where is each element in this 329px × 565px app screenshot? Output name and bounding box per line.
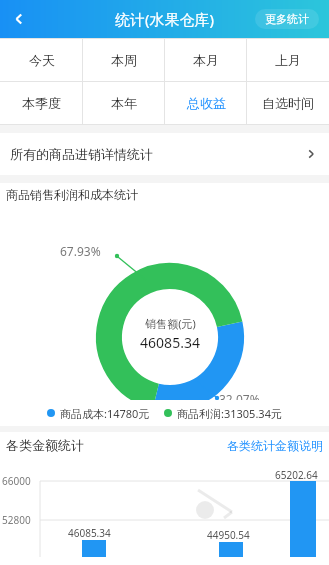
button[interactable]: Back [0,0,38,38]
staticText: 商品销售利润和成本统计 [6,187,138,202]
staticText: 66000 [2,474,31,488]
button[interactable]: 今天 [0,39,83,81]
staticText: 46085.34 [68,526,111,540]
staticText: 商品成本:14780元 [60,406,150,421]
staticText: 统计(水果仓库) [115,9,215,29]
staticText: 总收益 [187,95,226,111]
staticText: 各类统计金额说明 [227,438,323,453]
staticText: 本季度 [22,95,61,111]
staticText: 46085.34 [140,333,200,352]
staticText: 各类金额统计 [6,437,84,453]
staticText: 52800 [2,513,31,527]
staticText: 44950.54 [207,528,250,542]
staticText: 本年 [111,95,137,111]
button[interactable]: 各类统计金额说明 [227,438,323,453]
staticText: 上月 [275,52,301,68]
button[interactable]: 所有的商品进销详情统计 [0,133,329,175]
staticText: 今天 [29,52,55,68]
button[interactable]: 本月 [165,39,247,81]
staticText: 商品利润:31305.34元 [177,406,282,421]
button[interactable]: 本季度 [0,82,83,124]
staticText: 所有的商品进销详情统计 [10,146,153,162]
staticText: 32.07% [219,391,260,407]
button[interactable]: 本周 [83,39,165,81]
staticText: 自选时间 [262,95,314,111]
staticText: 更多统计 [265,12,309,26]
staticText: 65202.64 [275,468,318,482]
staticText: 销售额(元) [145,316,196,331]
button[interactable]: 本年 [83,82,165,124]
staticText: 本周 [111,52,137,68]
button[interactable]: 总收益 [165,82,247,124]
staticText: 本月 [193,52,219,68]
button[interactable]: 自选时间 [247,82,329,124]
button[interactable]: 更多统计 [255,9,319,29]
button[interactable]: 上月 [247,39,329,81]
staticText: 67.93% [60,243,101,259]
